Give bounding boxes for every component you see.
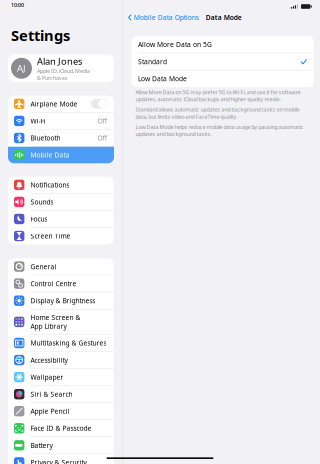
staticText: Mobile Data (30, 151, 69, 159)
staticText: Data Mode (206, 13, 242, 22)
button[interactable]: Face ID & Passcode (8, 420, 114, 437)
staticText: Sounds (30, 197, 53, 206)
staticText: 10:00 (11, 1, 24, 9)
staticText: Mobile Data Options (134, 13, 199, 22)
staticText: Accessibility (30, 356, 67, 364)
button[interactable]: Notifications (8, 177, 114, 193)
button[interactable]: AJ (8, 54, 114, 82)
button[interactable]: Apple Pencil (8, 403, 114, 420)
staticText: Airplane Mode (30, 99, 77, 108)
staticText: Home Screen & App Library (30, 313, 80, 331)
staticText: AJ (17, 62, 26, 74)
staticText: Apple Pencil (30, 407, 69, 416)
staticText: Wi-Fi (30, 116, 45, 125)
button[interactable]: Airplane Mode (8, 96, 114, 112)
staticText: Display & Brightness (30, 296, 95, 305)
button[interactable]: Privacy & Security (8, 454, 114, 464)
staticText: Focus (30, 214, 47, 223)
button[interactable]: Battery (8, 437, 114, 454)
staticText: Wallpaper (30, 373, 63, 382)
button[interactable]: Siri & Search (8, 386, 114, 402)
button[interactable]: Accessibility (8, 352, 114, 368)
staticText: Alan Jones (37, 55, 82, 67)
button[interactable]: Home Screen & App Library (8, 309, 114, 334)
staticText: Off (97, 116, 107, 125)
button[interactable]: Sounds (8, 194, 114, 210)
button[interactable]: Focus (8, 211, 114, 227)
staticText: Low Data Mode (138, 74, 187, 83)
button[interactable]: Control Centre (8, 275, 114, 292)
staticText: Notifications (30, 180, 69, 189)
button[interactable]: Display & Brightness (8, 292, 114, 309)
staticText: Control Centre (30, 279, 76, 288)
button[interactable]: Wi-Fi (8, 113, 114, 129)
staticText: Off (97, 133, 107, 142)
staticText: Face ID & Passcode (30, 424, 91, 433)
button[interactable]: Mobile Data (8, 147, 114, 163)
button[interactable]: Standard (131, 53, 314, 70)
staticText: Battery (30, 441, 52, 450)
button[interactable]: Bluetooth (8, 130, 114, 146)
staticText: Allow More Data on 5G (138, 40, 212, 49)
button[interactable]: Allow More Data on 5G (131, 36, 314, 53)
staticText: Siri & Search (30, 390, 72, 399)
staticText: Bluetooth (30, 133, 60, 142)
staticText: Low Data Mode helps reduce mobile data u… (135, 123, 303, 137)
staticText: Settings (11, 25, 70, 45)
button[interactable]: Wallpaper (8, 369, 114, 385)
button[interactable]: Screen Time (8, 228, 114, 244)
staticText: Multitasking & Gestures (30, 339, 106, 347)
staticText: General (30, 262, 56, 271)
staticText: Allow More Data on 5G may prefer 5G to W… (135, 89, 300, 103)
staticText: Standard allows automatic updates and ba… (135, 106, 299, 120)
button[interactable]: Low Data Mode (131, 70, 314, 87)
button[interactable]: Multitasking & Gestures (8, 335, 114, 351)
staticText: Standard (138, 57, 167, 66)
button[interactable]: Mobile Data Options (128, 13, 199, 22)
button[interactable]: General (8, 258, 114, 275)
staticText: & Purchases (37, 74, 68, 81)
staticText: Screen Time (30, 232, 70, 240)
staticText: Privacy & Security (30, 458, 86, 464)
staticText: Apple ID, iCloud, Media (37, 67, 90, 74)
